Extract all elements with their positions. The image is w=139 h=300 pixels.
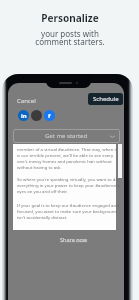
staticText: your posts with comment starters.: [35, 28, 105, 47]
button[interactable]: Facebook: [44, 110, 55, 121]
staticText: f: [48, 112, 51, 120]
staticText: member of a virtual #audience. That may,…: [17, 146, 118, 152]
staticText: eyes on you and off their.: [17, 188, 68, 194]
staticText: Schedule: [93, 95, 119, 103]
button[interactable]: Share now: [57, 233, 91, 246]
staticText: is our terrible present, we'll be able t…: [17, 152, 114, 158]
staticText: everything in your power to keep your #a…: [17, 182, 120, 188]
staticText: without having to ask.: [17, 164, 62, 170]
button[interactable]: Profile: [31, 110, 42, 121]
staticText: Cancel: [17, 97, 36, 105]
button[interactable]: Schedule: [88, 93, 123, 105]
button[interactable]: Get me started: [13, 129, 120, 143]
staticText: Personalize: [41, 11, 99, 25]
staticText: If your goal is to keep our #audience en…: [17, 202, 119, 208]
staticText: So where you're speaking virtually, you …: [17, 176, 118, 182]
staticText: Share now: [60, 236, 88, 243]
staticText: focused, you want to make sure your back…: [17, 208, 117, 214]
staticText: Get me started: [45, 132, 88, 140]
staticText: in: [21, 112, 27, 120]
staticText: isn't accidentally distract.: [17, 214, 68, 220]
button[interactable]: Cancel: [15, 95, 38, 107]
button[interactable]: LinkedIn: [18, 110, 29, 121]
staticText: one's messy homes and pandemic hair with…: [17, 158, 112, 164]
